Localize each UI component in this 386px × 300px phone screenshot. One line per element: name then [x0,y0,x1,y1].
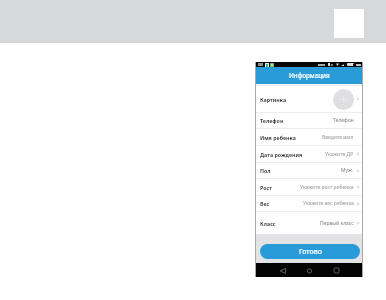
staticText: Рост [260,184,272,191]
button[interactable]: Рост [256,179,362,195]
staticText: Укажите ДР [325,151,354,158]
staticText: Укажите вес ребенка [303,200,354,207]
button[interactable]: Телефон [256,113,362,128]
staticText: Введите имя [322,134,354,141]
staticText: Первый класс [320,220,354,227]
staticText: Телефон [333,117,354,124]
button[interactable]: Back [276,264,289,277]
staticText: Картинка [260,96,287,103]
button[interactable]: Класс [256,212,362,234]
staticText: Готово [299,247,322,257]
staticText: Муж. [341,167,354,174]
button[interactable]: Готово [260,244,360,259]
button[interactable]: Картинка [256,86,362,112]
staticText: Пол [260,167,271,174]
staticText: Дата рождения [260,151,303,158]
button[interactable]: Пол [256,163,362,178]
staticText: Телефон [260,117,284,124]
button[interactable]: Recents [330,264,343,277]
staticText: Информация [289,71,330,80]
button[interactable]: Home [303,264,316,277]
button[interactable]: Вес [256,196,362,211]
staticText: Класс [260,220,276,227]
staticText: Вес [260,200,270,207]
button[interactable]: Имя ребенка [256,129,362,145]
staticText: Имя ребенка [260,134,296,141]
button[interactable]: Дата рождения [256,146,362,162]
staticText: Укажите рост ребенка [300,184,354,191]
